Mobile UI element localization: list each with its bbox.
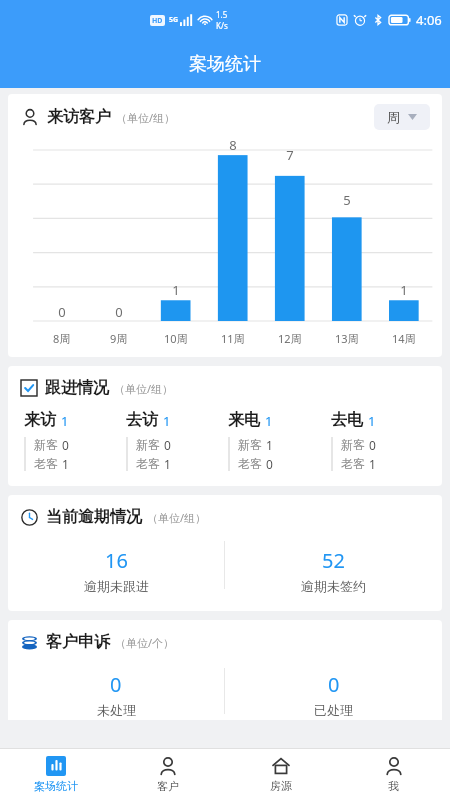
staticText: 5 (343, 191, 351, 209)
staticText: 新客 (136, 437, 160, 452)
staticText: 老客 (136, 456, 160, 471)
staticText: K/s (216, 20, 228, 31)
button[interactable]: 52 (225, 541, 442, 599)
button[interactable]: 16 (8, 541, 224, 599)
button[interactable]: 来访 (24, 410, 126, 472)
staticText: 5G (169, 15, 179, 25)
staticText: 1 (369, 456, 376, 472)
staticText: 12周 (278, 331, 302, 346)
staticText: 去访 (126, 410, 158, 430)
staticText: （单位/组） (147, 510, 207, 525)
staticText: （单位/个） (115, 635, 175, 650)
staticText: 0 (115, 303, 123, 321)
staticText: 16 (105, 547, 128, 574)
staticText: 1 (265, 412, 273, 430)
staticText: 1 (61, 412, 69, 430)
staticText: 案场统计 (34, 779, 78, 793)
staticText: 0 (328, 671, 340, 698)
staticText: 0 (266, 456, 273, 472)
staticText: 房源 (270, 779, 292, 793)
staticText: 新客 (238, 437, 262, 452)
staticText: 逾期未跟进 (84, 578, 149, 594)
staticText: 1 (400, 281, 408, 299)
button[interactable]: 0 (225, 668, 442, 720)
staticText: 0 (62, 437, 69, 453)
staticText: 1 (163, 412, 171, 430)
staticText: 周 (387, 109, 400, 125)
staticText: 14周 (392, 331, 416, 346)
staticText: 跟进情况 (45, 378, 109, 398)
staticText: 1 (368, 412, 376, 430)
button[interactable]: 案场统计 (0, 749, 112, 800)
staticText: 11周 (221, 331, 245, 346)
staticText: 8 (229, 136, 237, 154)
staticText: 客户申诉 (46, 632, 110, 652)
button[interactable]: 房源 (224, 749, 337, 800)
staticText: 4:06 (416, 11, 442, 29)
staticText: 52 (322, 547, 345, 574)
staticText: 老客 (341, 456, 365, 471)
staticText: 0 (369, 437, 376, 453)
staticText: 客户 (157, 779, 179, 793)
staticText: 1.5 (216, 9, 228, 20)
staticText: 老客 (34, 456, 58, 471)
button[interactable]: 去电 (331, 410, 434, 472)
staticText: 1 (62, 456, 69, 472)
button[interactable]: 0 (8, 668, 224, 720)
staticText: 来电 (228, 410, 260, 430)
button[interactable]: 来电 (228, 410, 331, 472)
staticText: HD (152, 16, 163, 26)
staticText: 案场统计 (189, 53, 261, 76)
staticText: 8周 (53, 331, 71, 346)
staticText: （单位/组） (114, 381, 174, 396)
button[interactable]: 周 (374, 104, 430, 130)
staticText: 1 (164, 456, 171, 472)
staticText: 未处理 (97, 702, 136, 718)
staticText: 来访客户 (47, 107, 111, 127)
staticText: 0 (58, 303, 66, 321)
staticText: （单位/组） (116, 110, 176, 125)
staticText: 0 (164, 437, 171, 453)
staticText: 来访 (24, 410, 56, 430)
staticText: 13周 (335, 331, 359, 346)
staticText: 9周 (110, 331, 128, 346)
button[interactable]: 去访 (126, 410, 228, 472)
staticText: 我 (388, 779, 399, 793)
staticText: 当前逾期情况 (46, 507, 142, 527)
button[interactable]: 我 (337, 749, 450, 800)
staticText: 新客 (34, 437, 58, 452)
staticText: 1 (266, 437, 273, 453)
button[interactable]: 客户 (112, 749, 224, 800)
staticText: 7 (286, 146, 294, 164)
staticText: 新客 (341, 437, 365, 452)
staticText: 已处理 (314, 702, 353, 718)
staticText: 10周 (164, 331, 188, 346)
staticText: 逾期未签约 (301, 578, 366, 594)
staticText: 1 (172, 281, 180, 299)
staticText: 老客 (238, 456, 262, 471)
staticText: 0 (110, 671, 122, 698)
staticText: 去电 (331, 410, 363, 430)
